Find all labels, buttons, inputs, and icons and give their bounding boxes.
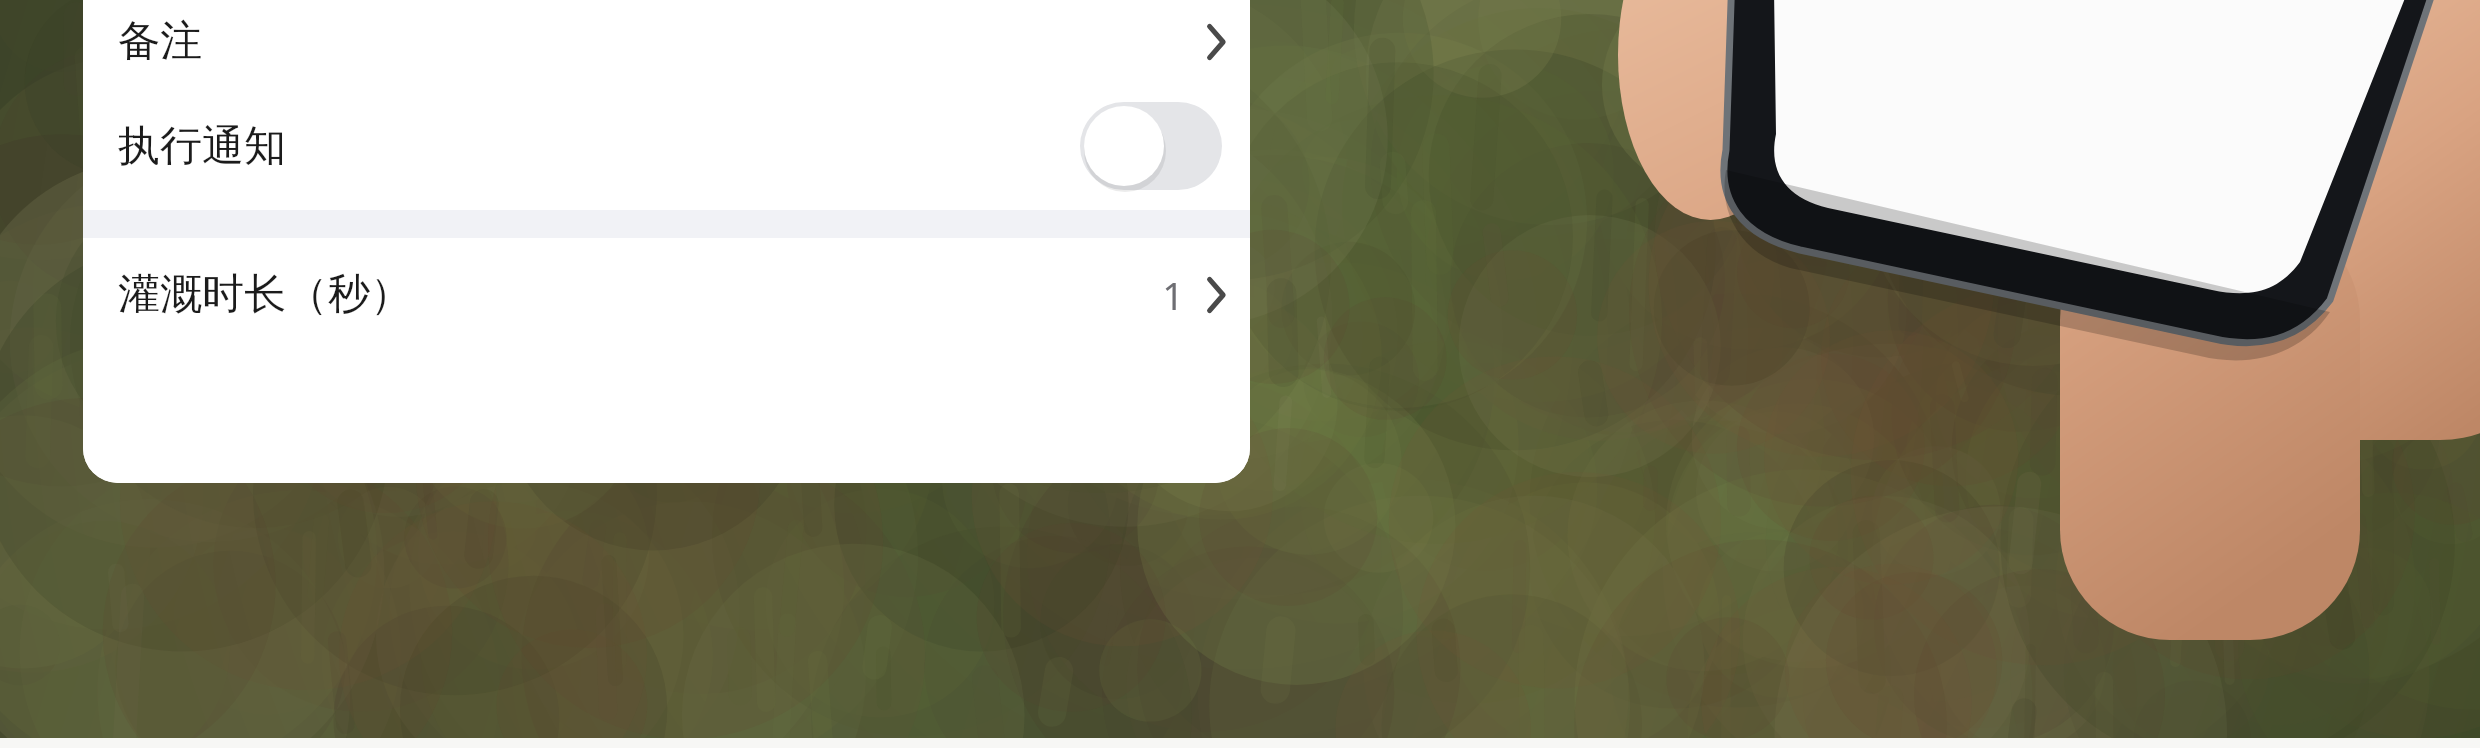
button[interactable]: 执行通知 开关: [1080, 102, 1222, 190]
staticText: 执行通知: [118, 120, 286, 173]
button[interactable]: 备注: [83, 0, 1250, 82]
button[interactable]: 灌溉时长（秒）: [83, 238, 1250, 351]
staticText: 1: [1162, 269, 1184, 321]
staticText: 灌溉时长（秒）: [118, 268, 412, 321]
button[interactable]: 执行通知: [83, 82, 1250, 210]
staticText: 备注: [118, 15, 202, 68]
